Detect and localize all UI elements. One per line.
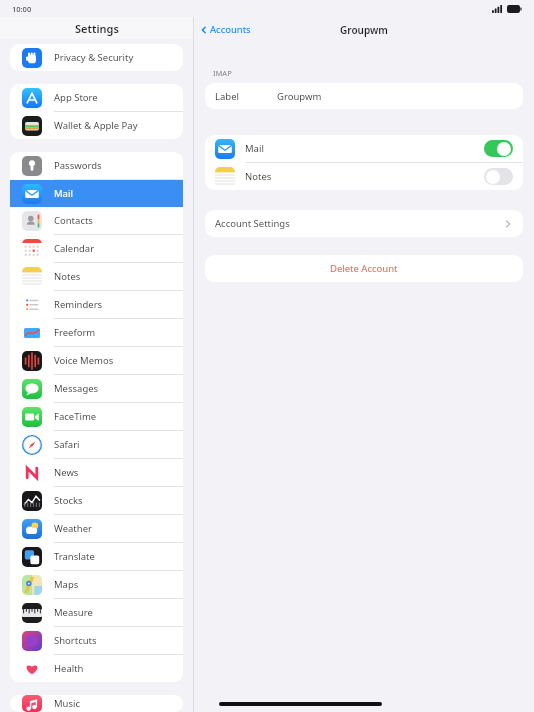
staticText: Music [54, 697, 81, 710]
button[interactable]: News [10, 459, 183, 486]
button[interactable]: Accounts [199, 23, 251, 36]
button[interactable]: Reminders [10, 291, 183, 318]
button[interactable]: Mail [10, 180, 183, 207]
staticText: Passwords [54, 159, 102, 172]
staticText: Settings [75, 21, 119, 36]
button[interactable]: Notes [10, 263, 183, 290]
staticText: Notes [54, 270, 81, 283]
button[interactable]: Notes [205, 163, 523, 190]
staticText: Delete Account [330, 262, 398, 275]
staticText: Label [215, 90, 239, 103]
staticText: Shortcuts [54, 634, 97, 647]
button[interactable]: Calendar [10, 235, 183, 262]
staticText: Contacts [54, 214, 93, 227]
button[interactable]: Wallet & Apple Pay [10, 112, 183, 139]
staticText: Account Settings [215, 217, 290, 230]
staticText: Calendar [54, 242, 95, 255]
staticText: Maps [54, 578, 79, 591]
button[interactable]: Contacts [10, 207, 183, 234]
staticText: Reminders [54, 298, 103, 311]
button[interactable]: Measure [10, 599, 183, 626]
button[interactable]: Privacy & Security [10, 44, 183, 71]
button[interactable]: Shortcuts [10, 627, 183, 654]
staticText: App Store [54, 91, 98, 104]
staticText: News [54, 466, 79, 479]
staticText: Stocks [54, 494, 83, 507]
button[interactable]: FaceTime [10, 403, 183, 430]
button[interactable]: Safari [10, 431, 183, 458]
staticText: Wallet & Apple Pay [54, 119, 138, 132]
button[interactable]: Translate [10, 543, 183, 570]
staticText: 10:00 [12, 4, 32, 14]
button[interactable]: Mail [205, 135, 523, 162]
staticText: Weather [54, 522, 92, 535]
staticText: Translate [54, 550, 95, 563]
button[interactable]: Passwords [10, 152, 183, 179]
button[interactable]: Messages [10, 375, 183, 402]
staticText: Notes [245, 170, 272, 183]
staticText: Health [54, 662, 84, 675]
staticText: IMAP [213, 68, 232, 78]
button[interactable]: On [484, 140, 513, 157]
staticText: Safari [54, 438, 80, 451]
button[interactable]: Health [10, 655, 183, 682]
button[interactable]: Account Settings [205, 210, 523, 237]
staticText: Mail [245, 142, 264, 155]
staticText: Groupwm [340, 23, 388, 37]
staticText: Mail [54, 187, 73, 200]
button[interactable]: Off [484, 168, 513, 185]
staticText: Voice Memos [54, 354, 114, 367]
button[interactable]: Stocks [10, 487, 183, 514]
button[interactable]: Label [205, 83, 523, 109]
staticText: Messages [54, 382, 99, 395]
button[interactable]: Music [10, 695, 183, 712]
staticText: FaceTime [54, 410, 97, 423]
button[interactable]: Freeform [10, 319, 183, 346]
button[interactable]: App Store [10, 84, 183, 111]
button[interactable]: Delete Account [205, 255, 523, 282]
button[interactable]: Maps [10, 571, 183, 598]
button[interactable]: Voice Memos [10, 347, 183, 374]
button[interactable]: Weather [10, 515, 183, 542]
staticText: Freeform [54, 326, 96, 339]
staticText: Groupwm [277, 90, 322, 103]
staticText: Measure [54, 606, 93, 619]
staticText: Accounts [210, 23, 251, 36]
staticText: Privacy & Security [54, 51, 134, 64]
